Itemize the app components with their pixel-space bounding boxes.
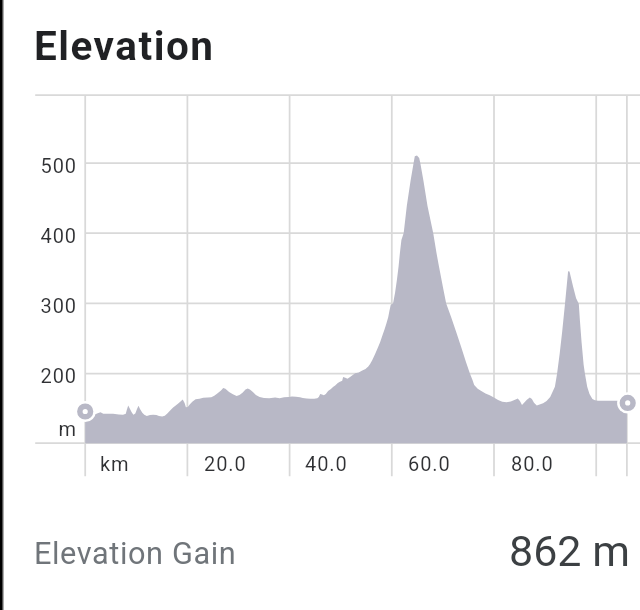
staticText: Elevation Gain [34, 536, 237, 572]
staticText: Elevation [34, 22, 215, 69]
staticText: 862 m [509, 526, 630, 576]
staticText: 40.0 [305, 452, 348, 475]
staticText: 80.0 [511, 452, 554, 475]
staticText: 400 [40, 224, 77, 247]
button[interactable]: Elevation [0, 0, 640, 80]
staticText: 500 [40, 154, 77, 177]
staticText: 200 [40, 364, 77, 387]
staticText: km [100, 452, 130, 475]
staticText: m [58, 417, 77, 440]
button[interactable]: Elevation Gain [0, 495, 640, 595]
staticText: 300 [40, 294, 77, 317]
staticText: 20.0 [204, 452, 247, 475]
staticText: 60.0 [408, 452, 451, 475]
button[interactable]: Elevation profile chart [0, 80, 640, 488]
